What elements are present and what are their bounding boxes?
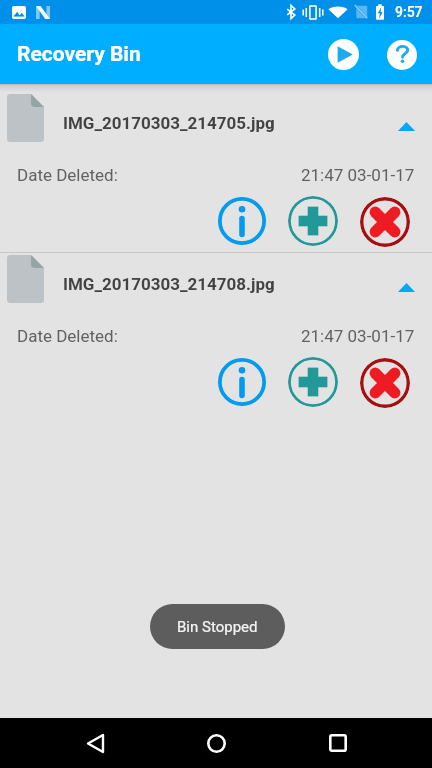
staticText: Date Deleted: — [17, 165, 118, 185]
button[interactable]: Help — [387, 40, 417, 70]
staticText: Bin Stopped — [177, 618, 258, 636]
button[interactable]: Restore — [288, 196, 338, 246]
staticText: IMG_20170303_214705.jpg — [63, 113, 275, 133]
staticText: 21:47 03-01-17 — [301, 165, 415, 185]
button[interactable]: Collapse — [390, 271, 422, 303]
button[interactable]: Home — [192, 718, 240, 768]
staticText: Date Deleted: — [17, 326, 118, 346]
button[interactable]: Start bin — [328, 39, 359, 70]
button[interactable]: Info — [217, 196, 267, 246]
staticText: 9:57 — [395, 4, 423, 20]
button[interactable]: Back — [71, 718, 119, 768]
button[interactable]: IMG_20170303_214708.jpg — [0, 253, 432, 414]
staticText: 21:47 03-01-17 — [301, 326, 415, 346]
button[interactable]: IMG_20170303_214705.jpg — [0, 92, 432, 253]
staticText: Recovery Bin — [17, 42, 141, 67]
button[interactable]: Info — [217, 357, 267, 407]
button[interactable]: Bin Stopped — [150, 604, 285, 649]
staticText: IMG_20170303_214708.jpg — [63, 274, 275, 294]
button[interactable]: Delete — [360, 358, 410, 408]
button[interactable]: Collapse — [390, 110, 422, 142]
button[interactable]: Restore — [288, 357, 338, 407]
button[interactable]: Recents — [314, 718, 362, 768]
button[interactable]: Delete — [360, 197, 410, 247]
